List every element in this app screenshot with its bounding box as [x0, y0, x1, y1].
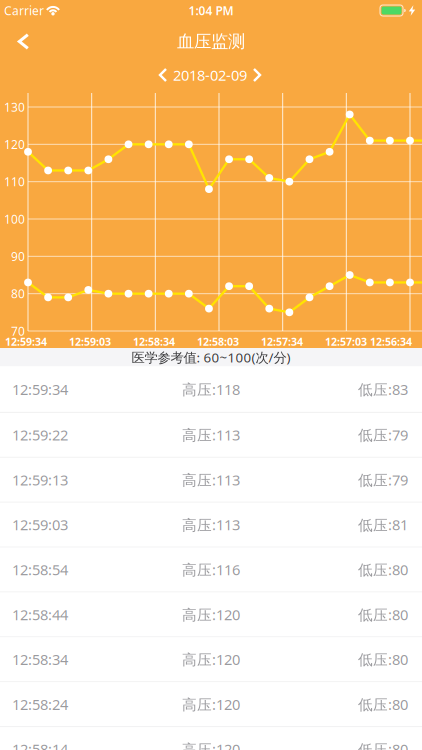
staticText: 130: [4, 99, 25, 115]
staticText: 12:58:54: [12, 560, 68, 579]
staticText: 高压:116: [182, 560, 240, 579]
staticText: 低压:80: [358, 739, 408, 750]
staticText: 高压:118: [182, 379, 240, 399]
staticText: 12:57:03: [325, 334, 367, 349]
button[interactable]: Back: [4, 22, 42, 60]
staticText: 高压:120: [182, 605, 240, 624]
staticText: 12:58:34: [133, 334, 175, 349]
staticText: 高压:120: [182, 694, 240, 714]
staticText: 低压:80: [358, 605, 408, 624]
staticText: 100: [4, 211, 25, 227]
staticText: 12:58:03: [197, 334, 239, 349]
staticText: 高压:113: [182, 515, 240, 534]
staticText: 12:59:34: [5, 334, 47, 349]
staticText: 12:59:03: [69, 334, 111, 349]
staticText: 90: [11, 248, 25, 264]
button[interactable]: Next day: [240, 61, 268, 89]
staticText: 低压:80: [358, 560, 408, 579]
staticText: 120: [4, 136, 25, 152]
staticText: 110: [4, 174, 25, 190]
staticText: 12:58:24: [12, 694, 68, 714]
staticText: 低压:80: [358, 694, 408, 714]
staticText: 高压:120: [182, 739, 240, 750]
staticText: 70: [11, 323, 25, 339]
staticText: 12:58:34: [12, 650, 68, 669]
staticText: 12:59:03: [12, 515, 68, 534]
staticText: 12:57:34: [261, 334, 303, 349]
staticText: 12:59:34: [12, 379, 68, 399]
staticText: 低压:83: [358, 379, 408, 399]
staticText: 1:04 PM: [188, 2, 233, 18]
staticText: 12:58:14: [12, 739, 68, 750]
staticText: Carrier: [4, 2, 44, 18]
button[interactable]: Previous day: [151, 61, 179, 89]
staticText: 血压监测: [177, 31, 245, 52]
staticText: 12:59:22: [12, 425, 68, 445]
staticText: 高压:113: [182, 470, 240, 489]
staticText: 12:58:44: [12, 605, 68, 624]
staticText: 低压:79: [358, 470, 408, 489]
staticText: 医学参考值: 60~100(次/分): [131, 348, 290, 366]
staticText: 高压:120: [182, 650, 240, 669]
staticText: 2018-02-09: [173, 65, 247, 85]
staticText: 80: [11, 286, 25, 302]
staticText: 高压:113: [182, 425, 240, 445]
staticText: 低压:81: [358, 515, 408, 534]
staticText: 12:56:34: [370, 334, 412, 349]
staticText: 12:59:13: [12, 470, 68, 489]
staticText: 低压:80: [358, 650, 408, 669]
staticText: 低压:79: [358, 425, 408, 445]
